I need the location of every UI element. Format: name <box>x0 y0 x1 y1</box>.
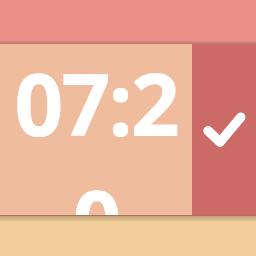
staticText: 07:20 <box>0 44 192 215</box>
button[interactable]: Mark alarm done <box>192 44 256 215</box>
button[interactable]: 07:20 <box>0 44 192 215</box>
